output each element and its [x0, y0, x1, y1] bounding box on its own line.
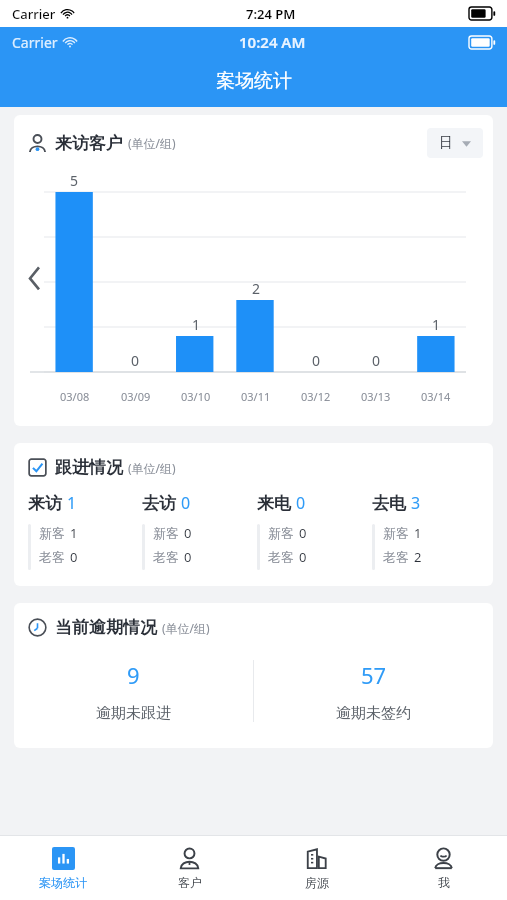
- button[interactable]: 日: [427, 128, 483, 158]
- staticText: 我: [438, 875, 450, 890]
- staticText: 03/14: [421, 389, 451, 404]
- staticText: Carrier: [12, 33, 58, 52]
- staticText: 0: [70, 548, 78, 566]
- staticText: 逾期未签约: [336, 704, 411, 723]
- staticText: 1: [414, 524, 422, 542]
- button[interactable]: 我: [380, 836, 507, 900]
- staticText: 案场统计: [39, 875, 87, 890]
- staticText: 0: [296, 492, 306, 514]
- staticText: (单位/组): [128, 135, 176, 151]
- staticText: 0: [312, 351, 321, 370]
- staticText: 日: [439, 134, 453, 152]
- staticText: 10:24 AM: [239, 32, 306, 52]
- staticText: (单位/组): [128, 460, 176, 476]
- staticText: 03/12: [301, 389, 331, 404]
- staticText: 1: [67, 492, 77, 514]
- staticText: 新客: [39, 525, 65, 541]
- staticText: 0: [299, 548, 307, 566]
- staticText: 5: [70, 171, 79, 190]
- staticText: 0: [131, 351, 140, 370]
- staticText: 57: [361, 660, 387, 690]
- staticText: 来访客户: [55, 133, 123, 154]
- staticText: 新客: [268, 525, 294, 541]
- staticText: 去电: [372, 493, 406, 514]
- staticText: 7:24 PM: [246, 5, 296, 23]
- button[interactable]: 房源: [253, 836, 380, 900]
- button[interactable]: 57: [254, 660, 493, 734]
- staticText: Carrier: [12, 5, 56, 23]
- staticText: 新客: [383, 525, 409, 541]
- staticText: 当前逾期情况: [55, 617, 157, 638]
- staticText: 来访: [28, 493, 62, 514]
- staticText: 跟进情况: [55, 457, 123, 478]
- staticText: 案场统计: [216, 69, 292, 93]
- staticText: 2: [252, 279, 261, 298]
- staticText: 逾期未跟进: [96, 704, 171, 723]
- staticText: 1: [192, 315, 201, 334]
- staticText: 老客: [383, 549, 409, 565]
- staticText: 0: [181, 492, 191, 514]
- button[interactable]: 9: [14, 660, 253, 734]
- button[interactable]: 案场统计: [0, 836, 126, 900]
- staticText: 0: [299, 524, 307, 542]
- staticText: (单位/组): [162, 620, 210, 636]
- staticText: 老客: [39, 549, 65, 565]
- staticText: 新客: [153, 525, 179, 541]
- staticText: 2: [414, 548, 422, 566]
- staticText: 0: [372, 351, 381, 370]
- staticText: 03/09: [121, 389, 151, 404]
- staticText: 客户: [178, 875, 202, 890]
- staticText: 1: [70, 524, 78, 542]
- staticText: 来电: [257, 493, 291, 514]
- staticText: 去访: [142, 493, 176, 514]
- staticText: 9: [127, 660, 140, 690]
- staticText: 0: [184, 524, 192, 542]
- staticText: 房源: [305, 875, 329, 890]
- staticText: 0: [184, 548, 192, 566]
- staticText: 老客: [268, 549, 294, 565]
- staticText: 3: [411, 492, 421, 514]
- staticText: 1: [432, 315, 441, 334]
- staticText: 03/11: [241, 389, 271, 404]
- staticText: 老客: [153, 549, 179, 565]
- staticText: 03/13: [361, 389, 391, 404]
- button[interactable]: 客户: [126, 836, 253, 900]
- staticText: 03/10: [181, 389, 211, 404]
- staticText: 03/08: [60, 389, 90, 404]
